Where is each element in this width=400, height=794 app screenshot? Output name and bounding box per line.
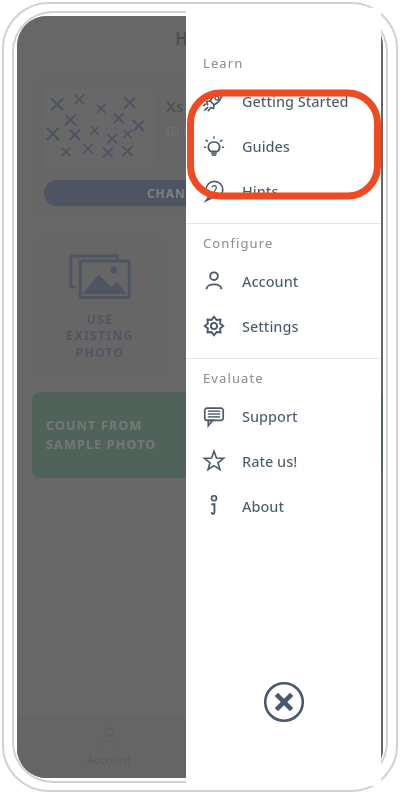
button[interactable]: About: [186, 483, 381, 528]
staticText: Getting Started: [242, 91, 349, 111]
staticText: Account: [87, 752, 131, 768]
button[interactable]: Hints: [186, 168, 381, 213]
staticText: ID:0: [166, 122, 191, 140]
staticText: Account: [242, 271, 299, 291]
button[interactable]: COUNT FROM SAMPLE PHOTO: [32, 392, 383, 478]
staticText: Learn: [203, 54, 244, 72]
staticText: CHANGE COUNT: [147, 185, 254, 201]
staticText: Hints: [242, 181, 279, 201]
staticText: USE EXISTING PHOTO: [66, 311, 134, 361]
button[interactable]: Account: [17, 716, 200, 778]
staticText: Rate us!: [242, 451, 298, 471]
button[interactable]: Settings: [200, 716, 383, 778]
staticText: Configure: [203, 234, 274, 252]
button[interactable]: Account: [186, 258, 381, 303]
staticText: Support: [242, 406, 298, 426]
button[interactable]: CHANGE COUNT: [44, 180, 356, 206]
button[interactable]: Support: [186, 393, 381, 438]
button[interactable]: Settings: [186, 303, 381, 348]
staticText: COUNT FROM SAMPLE PHOTO: [46, 417, 157, 453]
staticText: Home: [175, 27, 226, 50]
button[interactable]: Close menu: [262, 680, 306, 724]
staticText: Xs: [166, 96, 184, 116]
staticText: About: [242, 496, 284, 516]
staticText: Guides: [242, 136, 290, 156]
staticText: Settings: [242, 316, 299, 336]
button[interactable]: Rate us!: [186, 438, 381, 483]
button[interactable]: Guides: [186, 123, 381, 168]
button[interactable]: Xs: [32, 76, 368, 218]
button[interactable]: Getting Started: [186, 78, 381, 123]
button[interactable]: USE EXISTING PHOTO: [32, 236, 168, 376]
staticText: Evaluate: [203, 369, 264, 387]
